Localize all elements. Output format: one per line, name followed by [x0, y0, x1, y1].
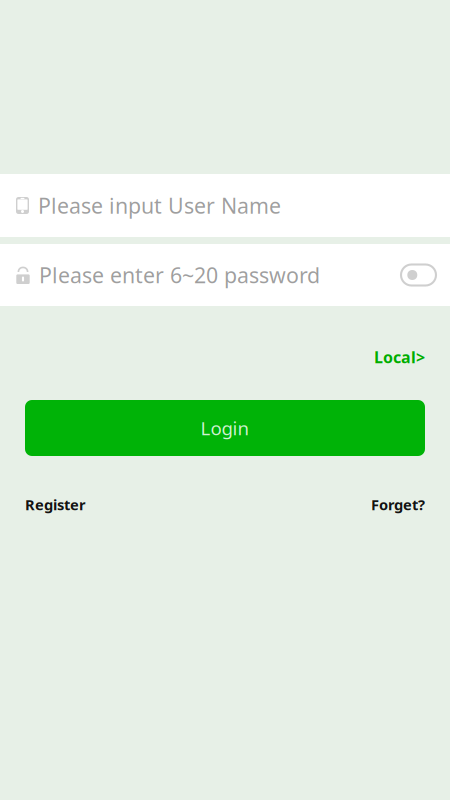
button[interactable]: Please input User Name: [0, 174, 450, 237]
staticText: Login: [200, 416, 249, 440]
button[interactable]: Please enter 6~20 password: [0, 244, 450, 306]
staticText: Register: [25, 495, 86, 514]
staticText: Please input User Name: [38, 191, 281, 220]
staticText: Please enter 6~20 password: [39, 261, 320, 289]
button[interactable]: Register: [25, 484, 110, 525]
staticText: Forget?: [371, 495, 425, 514]
button[interactable]: Login: [25, 400, 425, 456]
staticText: Local>: [374, 346, 425, 368]
button[interactable]: Forget?: [347, 484, 425, 525]
button[interactable]: Local>: [350, 338, 425, 376]
